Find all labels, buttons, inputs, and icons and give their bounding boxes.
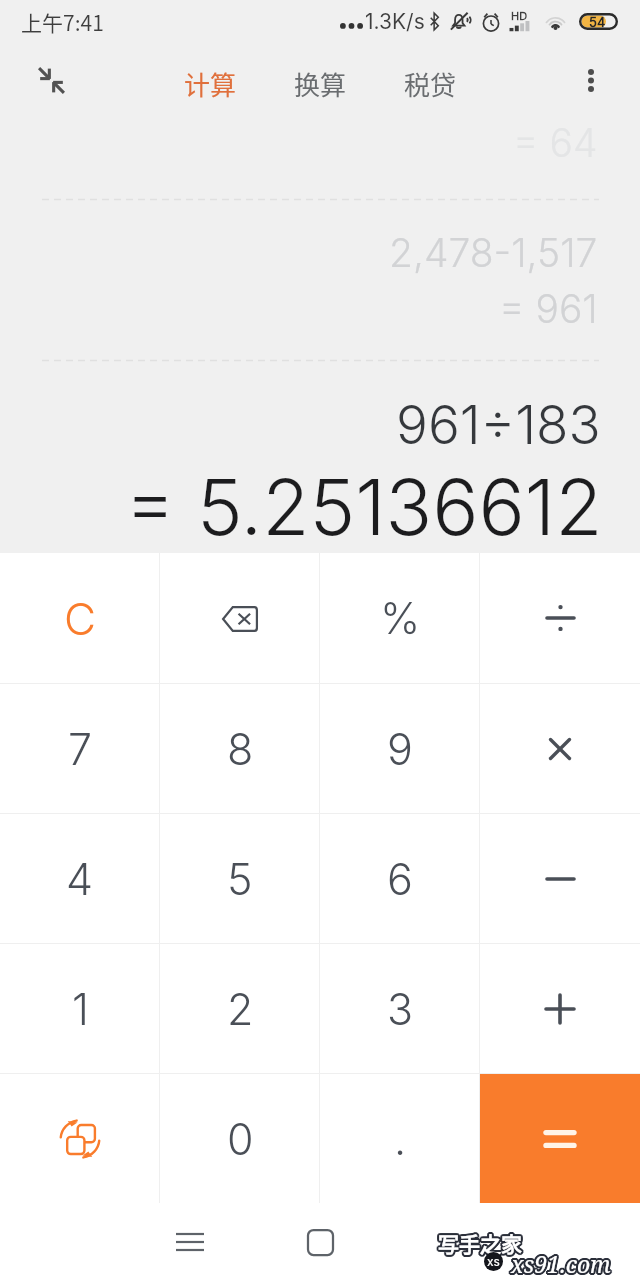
button[interactable]: Recents [162, 1214, 218, 1270]
staticText: = 64 [513, 119, 598, 166]
staticText: 1.3K/s [365, 9, 425, 34]
staticText: xs91.com [509, 1249, 609, 1280]
staticText: 计算 [184, 65, 237, 103]
staticText: xs91.com [512, 1246, 612, 1277]
staticText: 9 [387, 723, 413, 775]
button[interactable] [480, 944, 640, 1073]
staticText: 写手之家 [437, 1228, 521, 1258]
button[interactable]: Home [292, 1214, 348, 1270]
staticText: 写手之家 [438, 1229, 522, 1259]
button[interactable] [480, 553, 640, 683]
staticText: 写手之家 [439, 1230, 523, 1260]
staticText: 6 [387, 853, 413, 905]
staticText: 写手之家 [437, 1227, 521, 1257]
staticText: xs91.com [510, 1250, 610, 1280]
staticText: = 5.25136612 [125, 460, 603, 553]
staticText: % [380, 592, 421, 644]
staticText: xs91.com [510, 1247, 610, 1278]
staticText: 5 [227, 853, 253, 905]
staticText: xs91.com [511, 1247, 611, 1278]
staticText: xs91.com [510, 1249, 610, 1280]
button[interactable]: . [320, 1074, 480, 1203]
staticText: xs [487, 1254, 500, 1269]
staticText: 税贷 [404, 65, 457, 103]
button[interactable]: Collapse [22, 55, 80, 113]
staticText: 写手之家 [437, 1230, 521, 1260]
staticText: HD [511, 9, 528, 22]
button[interactable] [480, 814, 640, 943]
staticText: 上午7:41 [21, 7, 104, 37]
staticText: xs91.com [510, 1248, 610, 1279]
staticText: 写手之家 [436, 1227, 520, 1257]
button[interactable]: 换算 [282, 45, 358, 123]
staticText: 4 [66, 853, 94, 905]
staticText: 写手之家 [440, 1228, 524, 1258]
button[interactable]: 0 [160, 1074, 320, 1203]
button[interactable]: 4 [0, 814, 160, 943]
staticText: xs91.com [509, 1248, 609, 1279]
button[interactable]: % [320, 553, 480, 683]
staticText: xs91.com [512, 1248, 612, 1279]
staticText: xs91.com [509, 1247, 609, 1278]
staticText: xs91.com [513, 1249, 613, 1280]
staticText: 写手之家 [440, 1227, 524, 1257]
staticText: 写手之家 [436, 1229, 520, 1259]
staticText: 54 [589, 14, 606, 30]
staticText: 1 [72, 983, 89, 1035]
staticText: 8 [227, 723, 254, 775]
staticText: xs91.com [511, 1246, 611, 1277]
button[interactable]: 9 [320, 684, 480, 813]
button[interactable]: 8 [160, 684, 320, 813]
button[interactable] [480, 684, 640, 813]
button[interactable]: 3 [320, 944, 480, 1073]
staticText: xs91.com [511, 1250, 611, 1280]
staticText: 写手之家 [438, 1230, 522, 1260]
button[interactable]: 5 [160, 814, 320, 943]
staticText: = 961 [499, 285, 598, 332]
staticText: xs91.com [511, 1249, 611, 1280]
button[interactable]: 7 [0, 684, 160, 813]
staticText: xs91.com [512, 1249, 612, 1280]
staticText: xs91.com [513, 1248, 613, 1279]
staticText: 写手之家 [439, 1229, 523, 1259]
button[interactable]: C [0, 553, 160, 683]
button[interactable]: 1 [0, 944, 160, 1073]
staticText: 2 [227, 983, 254, 1035]
button[interactable]: More options [563, 56, 619, 112]
staticText: xs91.com [512, 1247, 612, 1278]
staticText: 961÷183 [396, 393, 601, 457]
staticText: C [64, 592, 97, 645]
staticText: 写手之家 [439, 1226, 523, 1256]
staticText: . [394, 1113, 407, 1165]
button[interactable] [160, 553, 320, 683]
staticText: xs91.com [510, 1246, 610, 1277]
staticText: 写手之家 [440, 1229, 524, 1259]
button[interactable]: 6 [320, 814, 480, 943]
staticText: 0 [227, 1113, 254, 1165]
staticText: 写手之家 [439, 1228, 523, 1258]
staticText: 写手之家 [436, 1228, 520, 1258]
staticText: 写手之家 [439, 1227, 523, 1257]
staticText: 写手之家 [438, 1228, 522, 1258]
staticText: 写手之家 [438, 1226, 522, 1256]
button[interactable]: 税贷 [392, 45, 468, 123]
staticText: 换算 [294, 65, 347, 103]
staticText: xs91.com [512, 1250, 612, 1280]
button[interactable]: 计算 [172, 45, 248, 123]
staticText: xs91.com [513, 1247, 613, 1278]
staticText: 7 [68, 723, 93, 775]
staticText: 写手之家 [437, 1229, 521, 1259]
staticText: 写手之家 [438, 1227, 522, 1257]
button[interactable]: Equals [480, 1074, 640, 1203]
button[interactable] [0, 1074, 160, 1203]
staticText: xs91.com [511, 1248, 611, 1279]
staticText: 2,478-1,517 [389, 229, 598, 276]
button[interactable]: 2 [160, 944, 320, 1073]
staticText: 3 [387, 983, 414, 1035]
staticText: 写手之家 [437, 1226, 521, 1256]
